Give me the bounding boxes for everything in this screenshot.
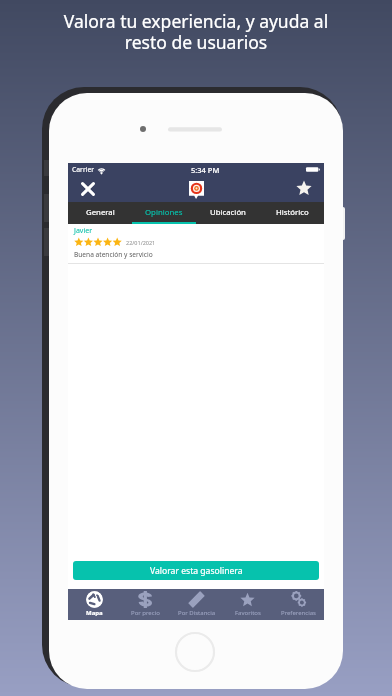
button[interactable]: Histórico: [260, 202, 324, 222]
staticText: Ubicación: [210, 207, 246, 218]
button[interactable]: Javier: [68, 224, 324, 263]
staticText: Opiniones: [145, 207, 183, 218]
staticText: Buena atención y servicio: [74, 250, 153, 259]
staticText: Histórico: [276, 207, 309, 218]
button[interactable]: Preferencias: [273, 589, 324, 620]
button[interactable]: Favoritos: [222, 589, 273, 620]
staticText: 5:34 PM: [191, 165, 220, 175]
staticText: Carrier: [72, 165, 95, 174]
staticText: Javier: [74, 226, 93, 236]
button[interactable]: General: [68, 202, 132, 222]
button[interactable]: Favorite: [293, 178, 315, 200]
button[interactable]: Opiniones: [132, 202, 196, 222]
button[interactable]: Close: [76, 177, 100, 201]
button[interactable]: Por precio: [120, 589, 171, 620]
staticText: 22/01/2021: [126, 239, 156, 246]
staticText: Por precio: [131, 609, 160, 617]
button[interactable]: Mapa: [68, 589, 120, 620]
button[interactable]: Ubicación: [196, 202, 260, 222]
staticText: Por Distancia: [178, 609, 216, 617]
button[interactable]: Por Distancia: [171, 589, 222, 620]
staticText: General: [86, 207, 115, 218]
staticText: Valora tu experiencia, y ayuda al resto …: [26, 9, 366, 54]
staticText: Preferencias: [281, 609, 316, 617]
button[interactable]: Valorar esta gasolinera: [73, 561, 319, 580]
staticText: Mapa: [86, 609, 103, 617]
staticText: Favoritos: [235, 609, 261, 617]
staticText: Valorar esta gasolinera: [150, 565, 243, 577]
